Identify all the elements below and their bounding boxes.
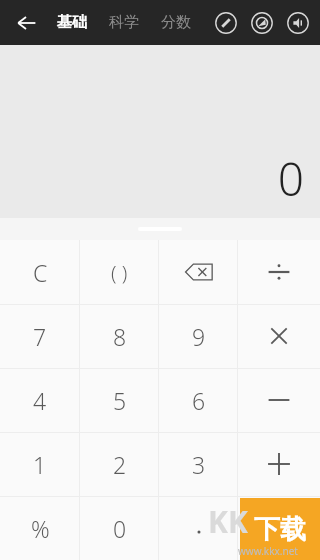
button[interactable]: Back <box>8 4 46 42</box>
staticText: 下载 <box>254 513 306 546</box>
staticText: 3 <box>192 449 206 480</box>
staticText: 0 <box>113 513 127 544</box>
staticText: 0 <box>277 147 304 210</box>
button[interactable]: ( ) <box>80 240 159 304</box>
other: Backspace <box>179 252 219 292</box>
button[interactable]: 8 <box>80 304 159 368</box>
button[interactable] <box>238 240 320 304</box>
staticText: C <box>33 257 48 288</box>
staticText: 分数 <box>161 13 191 32</box>
button[interactable]: 0 <box>80 496 159 560</box>
staticText: % <box>31 513 50 544</box>
staticText: 2 <box>113 449 127 480</box>
button[interactable]: 分数 <box>152 7 200 38</box>
staticText: 9 <box>192 321 206 352</box>
staticText: ( ) <box>111 259 128 286</box>
staticText: 科学 <box>109 13 139 32</box>
button[interactable] <box>238 432 320 496</box>
button[interactable]: Backspace <box>159 240 238 304</box>
staticText: 7 <box>33 321 47 352</box>
staticText: 1 <box>33 449 47 480</box>
staticText: 8 <box>113 321 127 352</box>
button[interactable]: Sound <box>280 5 316 41</box>
staticText: 5 <box>113 385 127 416</box>
staticText: 6 <box>192 385 206 416</box>
staticText: 4 <box>33 385 47 416</box>
button[interactable]: 1 <box>0 432 80 496</box>
staticText: www.kkx.net <box>238 544 298 558</box>
staticText: KK <box>208 501 248 542</box>
button[interactable]: 7 <box>0 304 80 368</box>
staticText: 基础 <box>57 13 87 32</box>
button[interactable]: 9 <box>159 304 238 368</box>
button[interactable] <box>238 304 320 368</box>
button[interactable]: 5 <box>80 368 159 432</box>
button[interactable]: 3 <box>159 432 238 496</box>
button[interactable]: 科学 <box>100 7 148 38</box>
button[interactable]: 2 <box>80 432 159 496</box>
button[interactable] <box>238 368 320 432</box>
button[interactable]: 4 <box>0 368 80 432</box>
button[interactable] <box>159 496 238 560</box>
button[interactable]: Edit <box>208 5 244 41</box>
button[interactable]: C <box>0 240 80 304</box>
button[interactable]: Theme <box>244 5 280 41</box>
button[interactable]: % <box>0 496 80 560</box>
button[interactable]: 6 <box>159 368 238 432</box>
button[interactable]: 基础 <box>48 7 96 38</box>
button[interactable] <box>238 496 320 560</box>
